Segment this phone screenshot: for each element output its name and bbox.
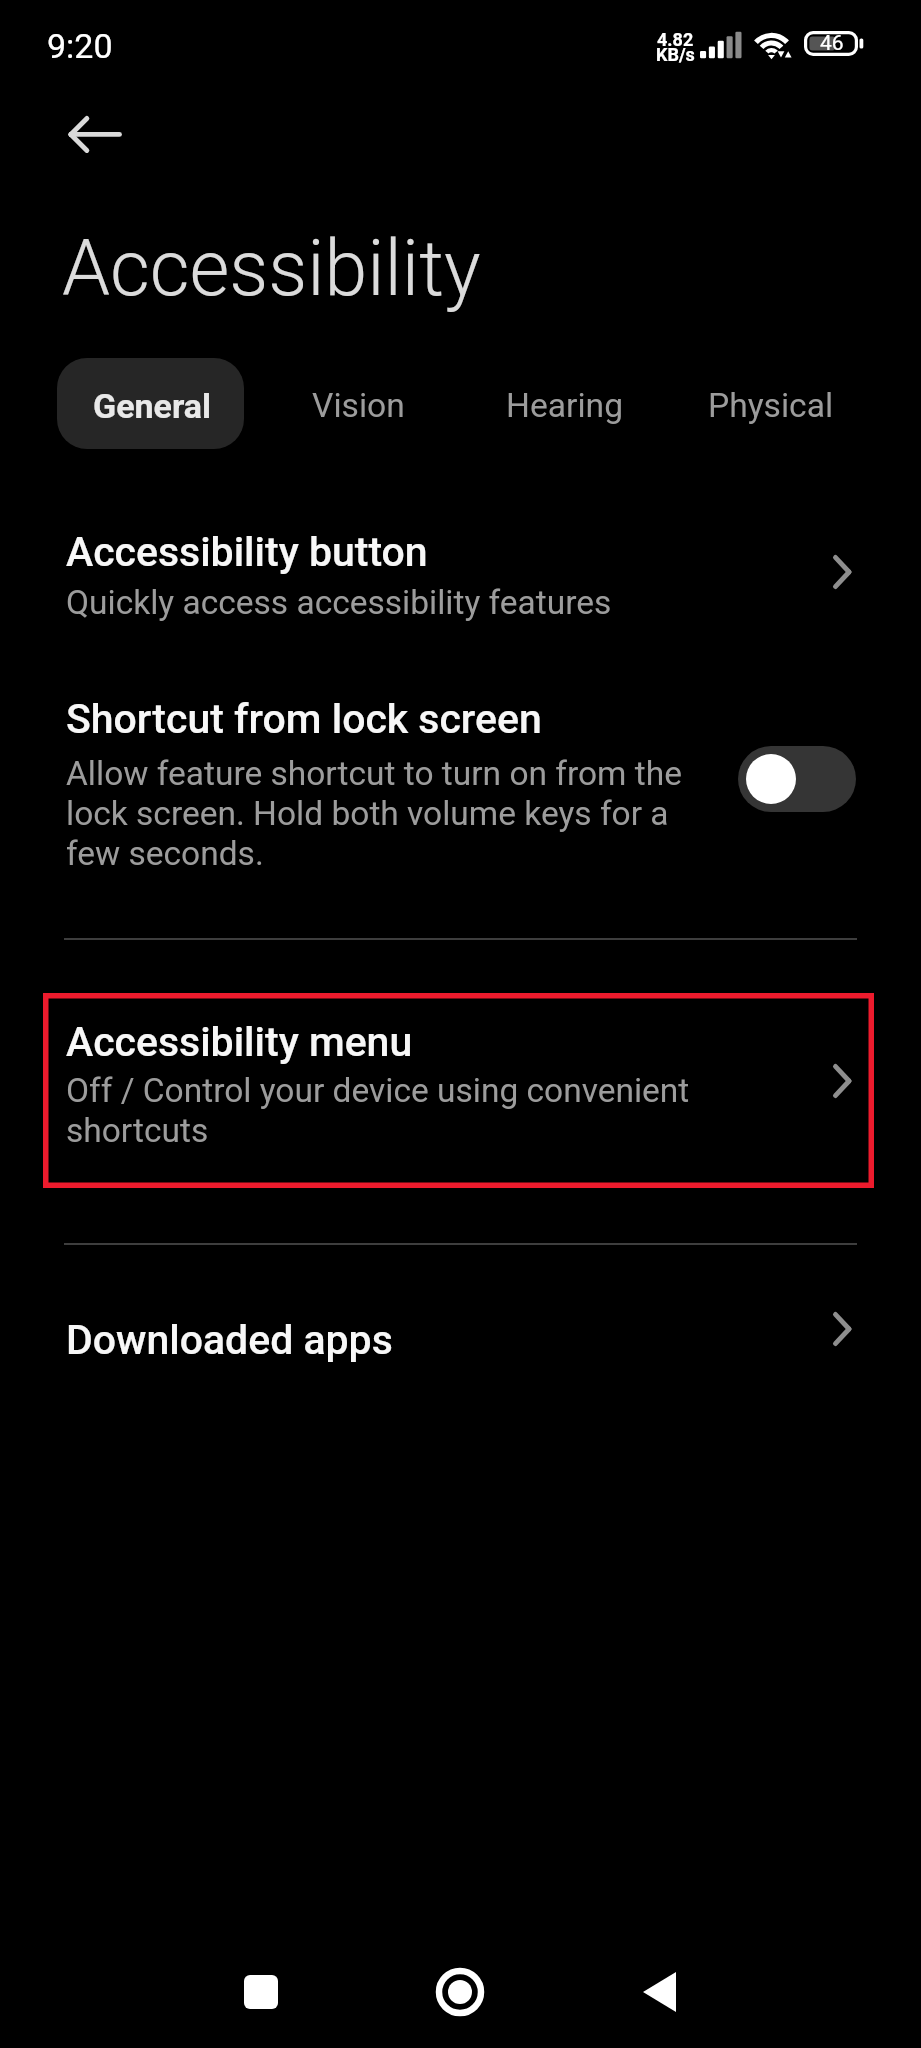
- staticText: 46: [820, 31, 844, 56]
- staticText: Physical: [708, 386, 834, 425]
- staticText: Downloaded apps: [66, 1316, 393, 1364]
- button[interactable]: Accessibility menu: [43, 993, 874, 1188]
- button[interactable]: Accessibility button: [0, 505, 921, 640]
- staticText: KB/s: [656, 44, 695, 65]
- button[interactable]: Back: [610, 1943, 708, 2041]
- button[interactable]: Back: [58, 106, 132, 164]
- button[interactable]: Hearing: [484, 358, 646, 449]
- staticText: Quickly access accessibility features: [66, 583, 612, 622]
- staticText: Hearing: [506, 386, 624, 425]
- button[interactable]: Physical: [686, 358, 856, 449]
- button[interactable]: General: [57, 358, 244, 449]
- staticText: Accessibility menu: [66, 1018, 413, 1066]
- button[interactable]: Shortcut from lock screen toggle: [738, 746, 856, 812]
- staticText: Accessibility: [62, 224, 481, 314]
- button[interactable]: Shortcut from lock screen: [0, 672, 921, 897]
- staticText: Off / Control your device using convenie…: [66, 1070, 690, 1150]
- staticText: Allow feature shortcut to turn on from t…: [66, 754, 682, 874]
- button[interactable]: Vision: [290, 358, 427, 449]
- staticText: General: [93, 386, 212, 426]
- staticText: 9:20: [47, 26, 113, 66]
- button[interactable]: Recents: [212, 1943, 310, 2041]
- button[interactable]: Downloaded apps: [0, 1290, 921, 1386]
- staticText: 4.82: [657, 29, 694, 50]
- button[interactable]: Home: [411, 1943, 509, 2041]
- staticText: Accessibility button: [66, 528, 428, 576]
- staticText: Shortcut from lock screen: [66, 695, 542, 743]
- staticText: Vision: [312, 386, 405, 425]
